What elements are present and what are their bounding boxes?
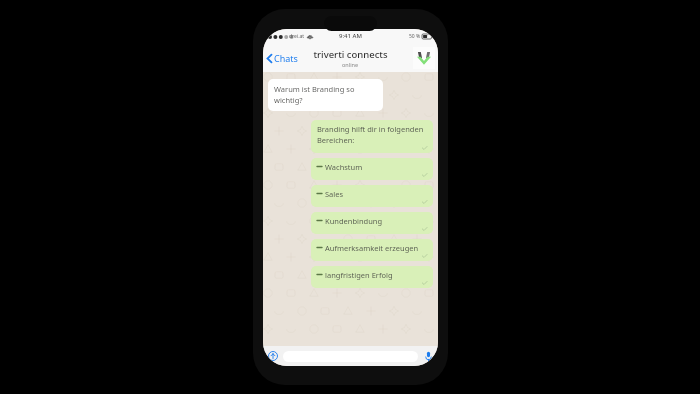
staticText: 50 % xyxy=(409,33,421,40)
button[interactable]: Contact profile xyxy=(413,47,435,69)
button[interactable]: Warum ist Branding so wichtig? xyxy=(268,79,383,111)
button[interactable]: Attach xyxy=(267,350,279,362)
button[interactable]: Wachstum xyxy=(311,158,433,180)
staticText: triverti connects xyxy=(313,48,388,61)
staticText: drei.at xyxy=(289,33,305,40)
staticText: 9:41 AM xyxy=(339,32,362,40)
button[interactable]: langfristigen Erfolg xyxy=(311,266,433,288)
staticText: online xyxy=(342,61,359,68)
staticText: Wachstum xyxy=(325,162,363,172)
staticText: Warum ist Branding so wichtig? xyxy=(274,84,378,105)
staticText: Branding hilft dir in folgenden Bereiche… xyxy=(317,124,428,145)
staticText: Sales xyxy=(325,189,344,199)
staticText: Chats xyxy=(274,52,298,64)
button[interactable]: Chats xyxy=(265,48,300,68)
button[interactable]: Aufmerksamkeit erzeugen xyxy=(311,239,433,261)
button[interactable]: Sales xyxy=(311,185,433,207)
staticText: Aufmerksamkeit erzeugen xyxy=(325,243,419,253)
button[interactable]: Branding hilft dir in folgenden Bereiche… xyxy=(311,120,433,153)
button[interactable]: Kundenbindung xyxy=(311,212,433,234)
button[interactable]: Voice message xyxy=(422,350,434,362)
staticText: Kundenbindung xyxy=(325,216,383,226)
staticText: langfristigen Erfolg xyxy=(325,270,393,280)
